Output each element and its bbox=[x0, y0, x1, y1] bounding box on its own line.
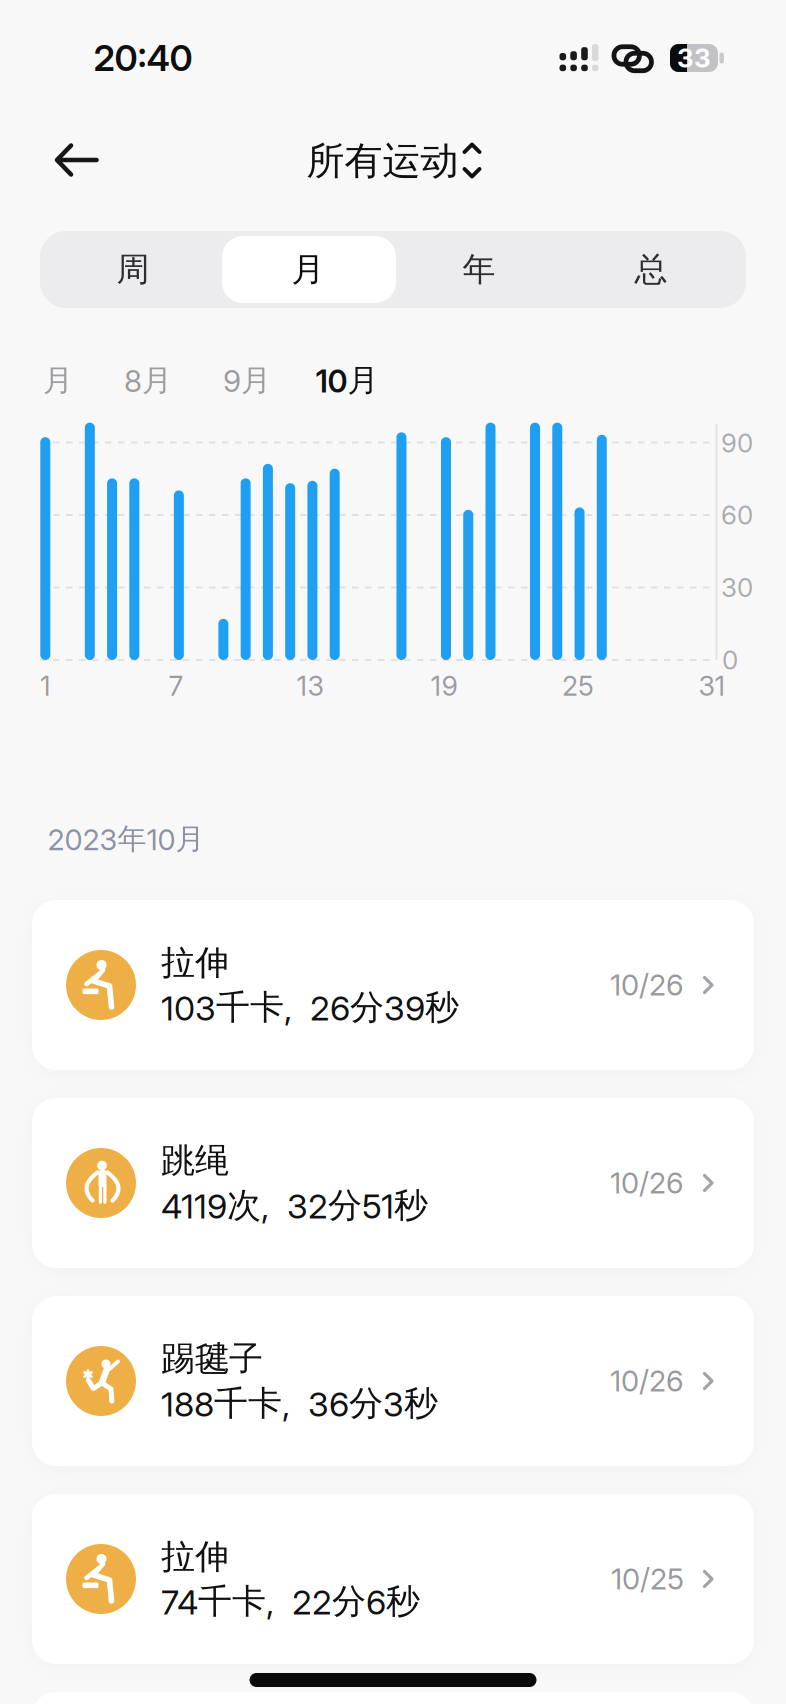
button[interactable]: 踢毽子 bbox=[32, 1296, 754, 1466]
staticText: 0 bbox=[722, 644, 738, 676]
button[interactable]: 所有运动 bbox=[283, 136, 488, 186]
staticText: 4119次, 32分51秒 bbox=[161, 1184, 428, 1227]
staticText: 年 bbox=[462, 249, 495, 290]
staticText: 拉伸 bbox=[161, 1535, 229, 1578]
staticText: 10月 bbox=[315, 361, 378, 400]
staticText: 10/26 bbox=[610, 1363, 684, 1399]
staticText: 月 bbox=[43, 362, 73, 399]
staticText: 33 bbox=[677, 42, 711, 74]
button[interactable]: 年 bbox=[391, 231, 567, 308]
staticText: 10/26 bbox=[610, 967, 684, 1003]
staticText: 2023年10月 bbox=[47, 821, 204, 857]
staticText: 19 bbox=[430, 670, 457, 702]
staticText: 60 bbox=[721, 499, 753, 531]
button[interactable]: 月 bbox=[3, 353, 113, 407]
staticText: 月 bbox=[291, 249, 324, 290]
staticText: 总 bbox=[634, 249, 667, 290]
staticText: 踢毽子 bbox=[161, 1337, 263, 1380]
staticText: 90 bbox=[721, 427, 753, 459]
button[interactable]: 拉伸 bbox=[32, 900, 754, 1070]
staticText: 10/25 bbox=[611, 1561, 684, 1597]
button[interactable]: 10月 bbox=[292, 353, 402, 407]
staticText: 13 bbox=[296, 670, 323, 702]
staticText: 31 bbox=[698, 670, 725, 702]
button[interactable] bbox=[44, 135, 108, 185]
button[interactable]: 9月 bbox=[192, 353, 302, 407]
staticText: 周 bbox=[116, 249, 149, 290]
staticText: 跳绳 bbox=[161, 1139, 229, 1182]
staticText: 所有运动 bbox=[306, 137, 458, 185]
staticText: 8月 bbox=[124, 362, 172, 399]
staticText: 20:40 bbox=[93, 36, 192, 80]
staticText: 拉伸 bbox=[161, 941, 229, 984]
staticText: 74千卡, 22分6秒 bbox=[161, 1580, 420, 1623]
button[interactable]: 8月 bbox=[93, 353, 203, 407]
button[interactable]: 拉伸 bbox=[32, 1494, 754, 1664]
button[interactable]: 周 bbox=[45, 231, 221, 308]
staticText: 103千卡, 26分39秒 bbox=[161, 986, 459, 1029]
staticText: 25 bbox=[562, 670, 594, 702]
staticText: 1 bbox=[40, 670, 51, 702]
button[interactable]: 跳绳 bbox=[32, 1098, 754, 1268]
staticText: 188千卡, 36分3秒 bbox=[161, 1382, 438, 1425]
staticText: 9月 bbox=[223, 362, 271, 399]
staticText: 10/26 bbox=[610, 1165, 684, 1201]
staticText: 30 bbox=[721, 572, 753, 603]
button[interactable]: 总 bbox=[563, 231, 739, 308]
button[interactable]: 月 bbox=[220, 231, 396, 308]
staticText: 7 bbox=[168, 670, 183, 702]
